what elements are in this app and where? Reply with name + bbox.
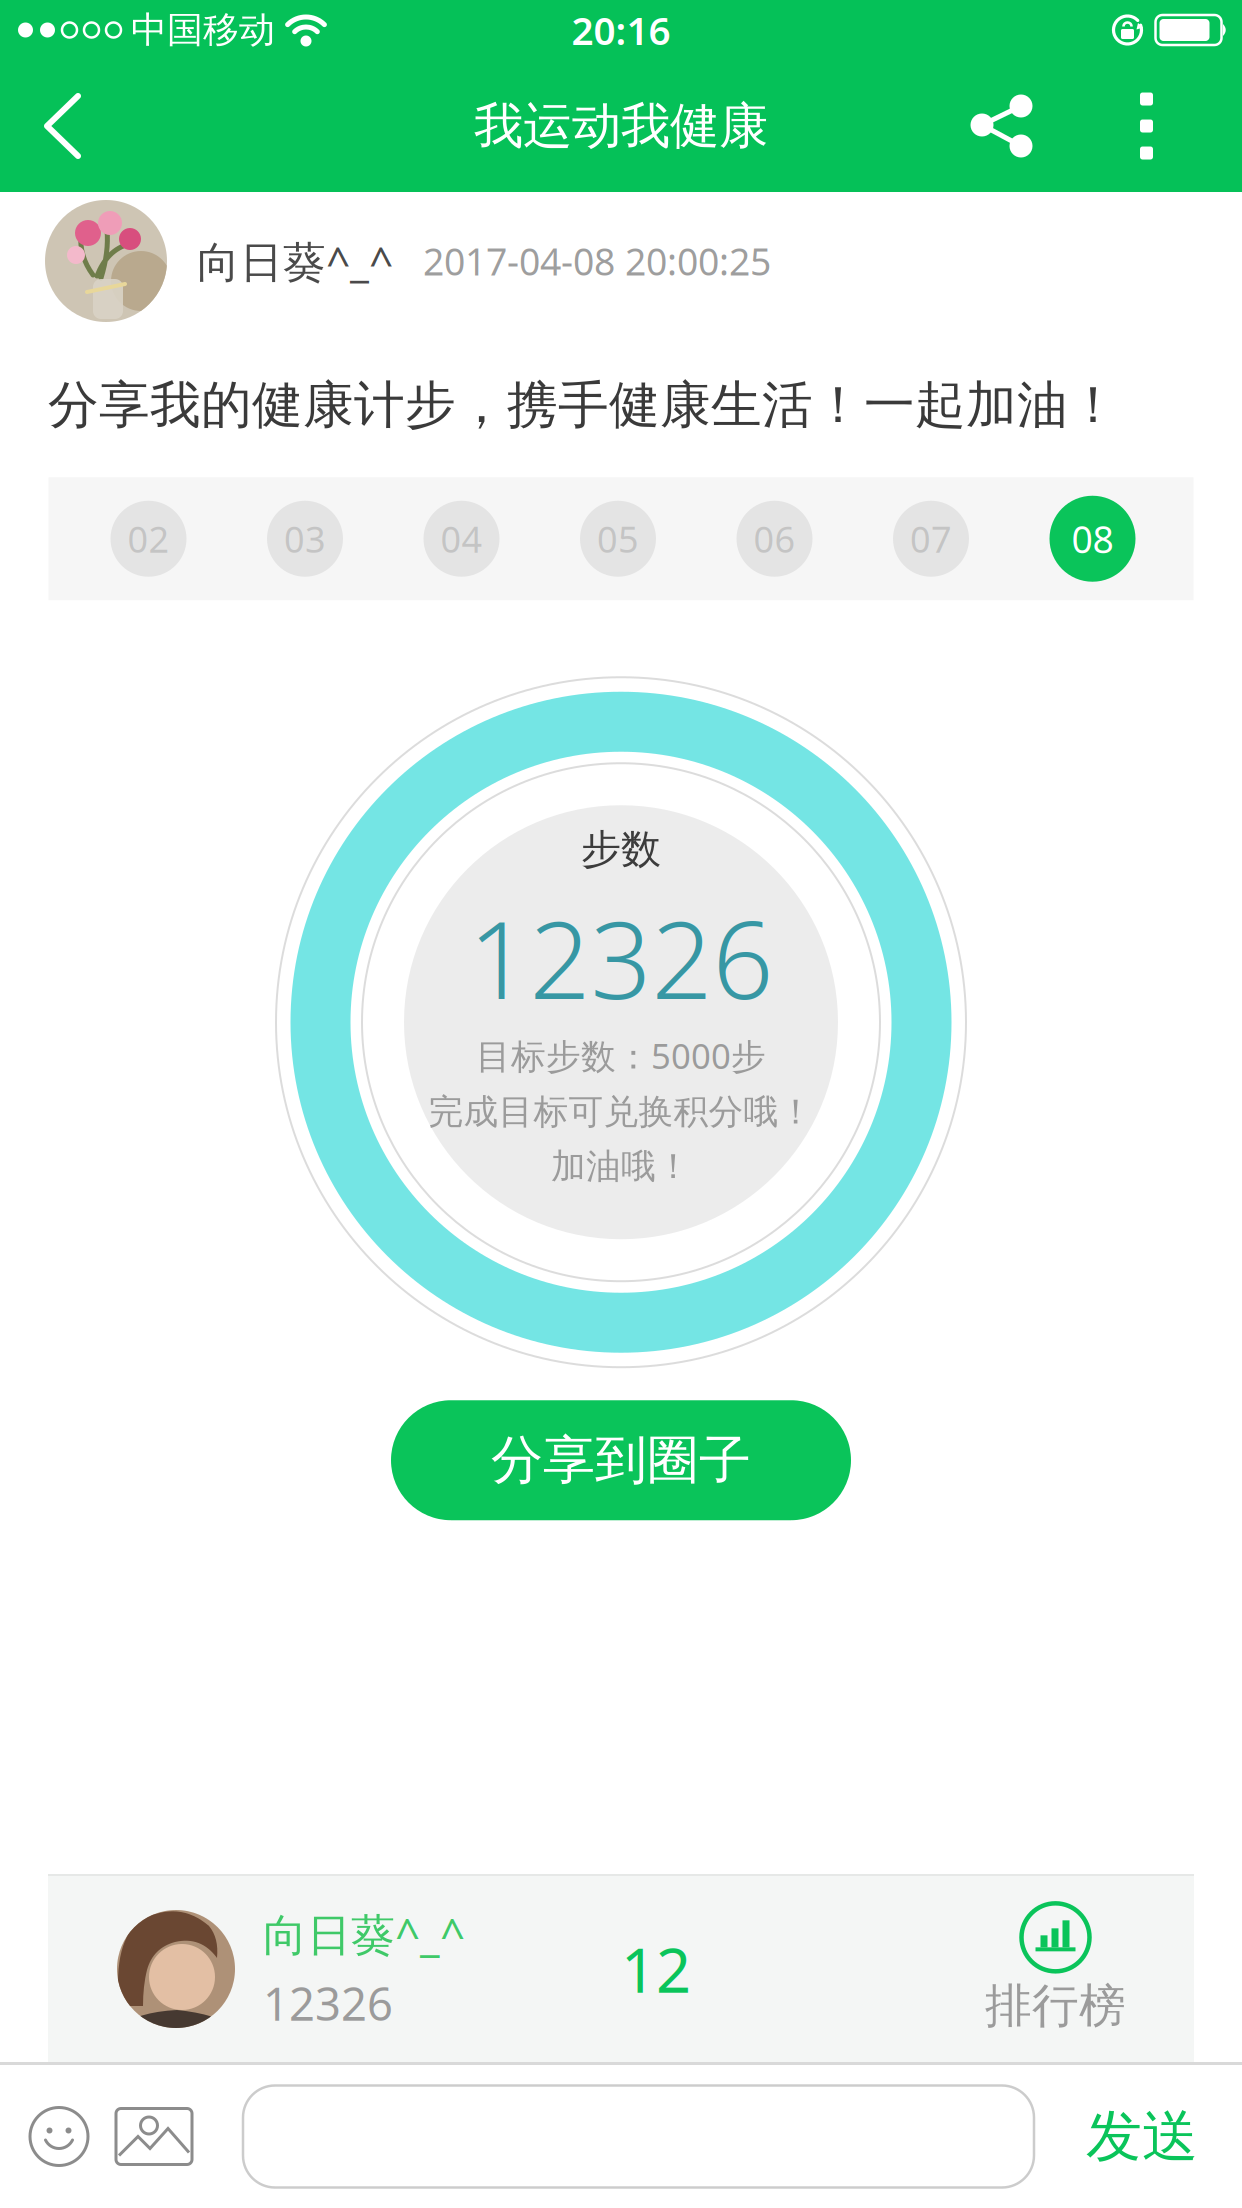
button[interactable]: 03 <box>267 501 343 577</box>
staticText: 08 <box>1071 514 1113 563</box>
staticText: 我运动我健康 <box>474 96 768 156</box>
staticText: 05 <box>597 515 639 563</box>
staticText: 2017-04-08 20:00:25 <box>423 236 771 286</box>
button[interactable]: 发送 <box>1034 2102 1242 2171</box>
staticText: 发送 <box>1086 2102 1198 2171</box>
button[interactable]: Photo <box>88 2108 192 2164</box>
staticText: 排行榜 <box>985 1977 1126 2035</box>
button[interactable]: Back <box>0 92 112 160</box>
staticText: 步数 <box>581 825 661 874</box>
staticText: 向日葵^_^ <box>197 233 393 289</box>
button[interactable]: 评论输入框 <box>192 2085 1034 2187</box>
staticText: 04 <box>440 515 482 563</box>
staticText: 12326 <box>263 1973 393 2033</box>
staticText: 12 <box>621 1928 691 2010</box>
staticText: 中国移动 <box>131 8 275 52</box>
button[interactable]: 08 <box>1049 496 1135 582</box>
staticText: 完成目标可兑换积分哦！ <box>428 1091 813 1133</box>
staticText: 加油哦！ <box>551 1145 691 1188</box>
staticText: 向日葵^_^ <box>263 1905 465 1963</box>
button[interactable]: 06 <box>736 501 812 577</box>
button[interactable]: Emoji <box>0 2107 88 2165</box>
staticText: 02 <box>127 515 169 563</box>
staticText: 03 <box>284 515 326 563</box>
staticText: 07 <box>910 515 952 563</box>
button[interactable]: 05 <box>580 501 656 577</box>
button[interactable]: 04 <box>423 501 499 577</box>
button[interactable]: 02 <box>110 501 186 577</box>
staticText: 20:16 <box>571 4 670 56</box>
staticText: 分享到圈子 <box>491 1428 751 1492</box>
button[interactable]: More <box>1033 92 1242 159</box>
staticText: 目标步数：5000步 <box>476 1032 766 1078</box>
button[interactable]: 分享到圈子 <box>391 1400 851 1520</box>
staticText: 分享我的健康计步，携手健康生活！一起加油！ <box>48 374 1119 436</box>
button[interactable]: Share <box>971 94 1033 158</box>
button[interactable]: 排行榜 <box>985 1903 1242 2035</box>
staticText: 06 <box>753 515 795 563</box>
button[interactable]: 07 <box>893 501 969 577</box>
staticText: 12326 <box>468 887 773 1028</box>
